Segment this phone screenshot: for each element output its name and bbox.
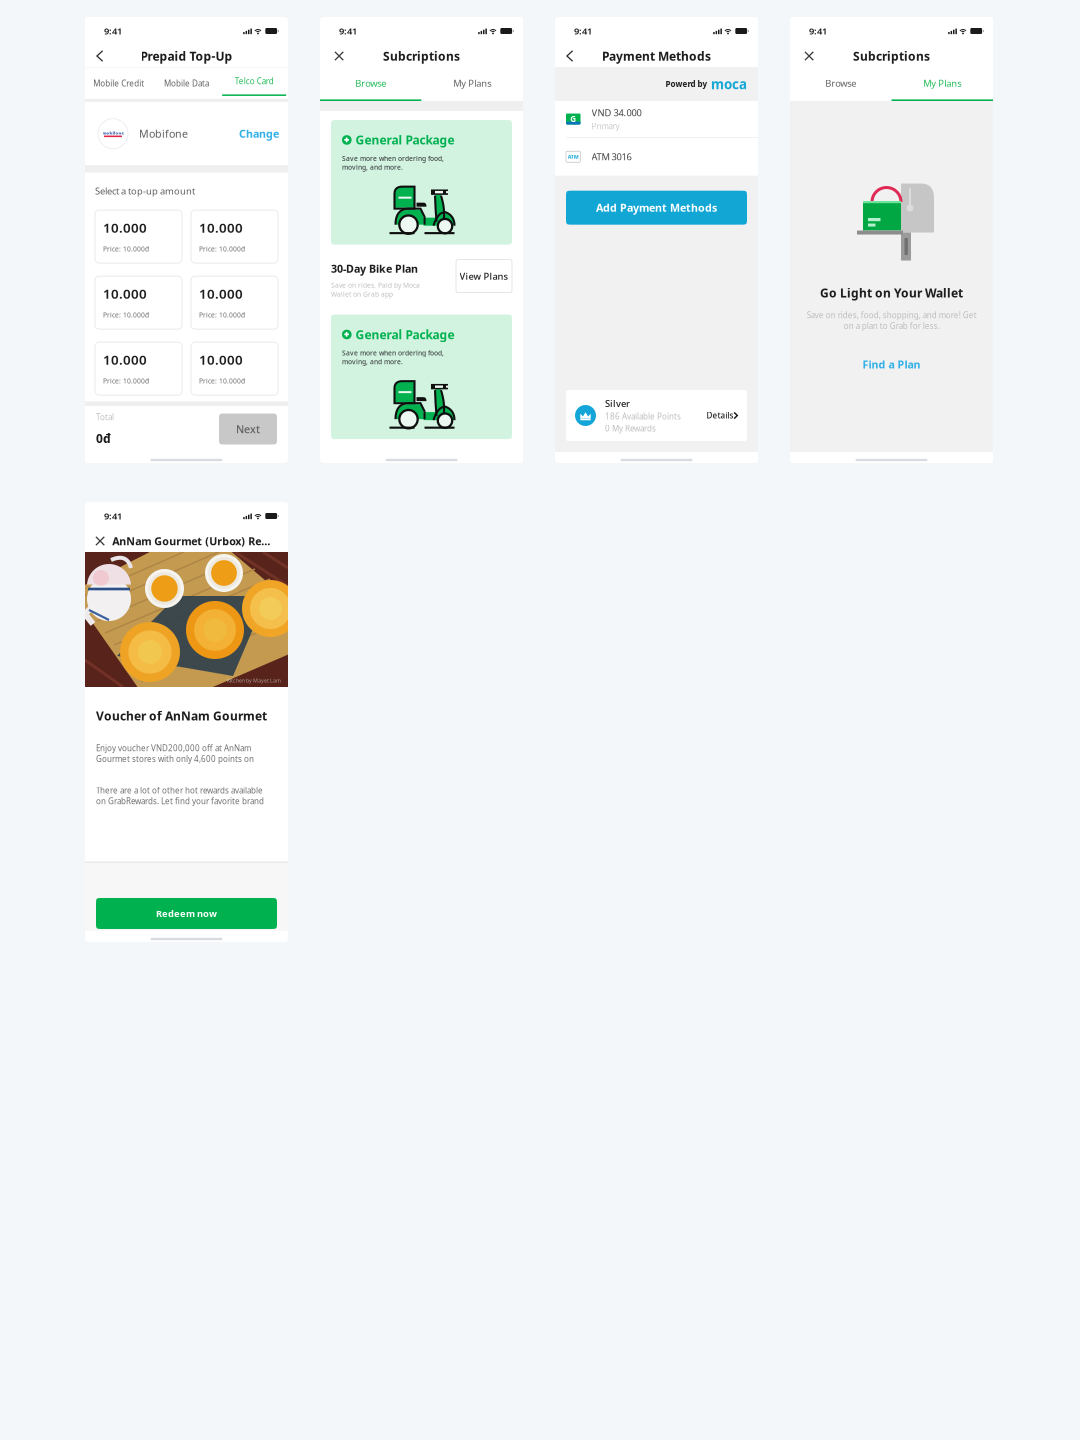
- staticText: 10.000: [199, 351, 243, 368]
- staticText: 9:41: [809, 25, 827, 37]
- staticText: Mobile Data: [164, 78, 209, 89]
- staticText: Payment Methods: [602, 48, 711, 64]
- staticText: Go Light on Your Wallet: [820, 285, 963, 301]
- button[interactable]: My Plans: [421, 67, 523, 101]
- button[interactable]: Back: [555, 45, 583, 67]
- button[interactable]: 10.000: [191, 276, 278, 329]
- staticText: Select a top-up amount: [95, 185, 195, 197]
- button[interactable]: Next: [219, 413, 277, 444]
- button[interactable]: Redeem now: [96, 898, 277, 929]
- staticText: Next: [236, 422, 260, 436]
- button[interactable]: Close: [790, 46, 822, 66]
- staticText: 0đ: [96, 430, 111, 446]
- button[interactable]: My Plans: [891, 67, 993, 101]
- staticText: 9:41: [104, 510, 122, 522]
- button[interactable]: View Plans: [456, 260, 512, 293]
- staticText: Prepaid Top-Up: [140, 48, 232, 64]
- staticText: mobifone: [102, 130, 123, 135]
- button[interactable]: 10.000: [95, 276, 182, 329]
- button[interactable]: Browse: [790, 67, 891, 101]
- staticText: Telco Card: [235, 76, 274, 86]
- staticText: My Plans: [923, 77, 961, 89]
- staticText: AnNam Gourmet (Urbox) Rewa...: [112, 534, 273, 548]
- staticText: Subcriptions: [383, 48, 460, 64]
- staticText: Details: [706, 410, 733, 421]
- staticText: There are a lot of other hot rewards ava…: [96, 785, 264, 806]
- staticText: Add Payment Methods: [596, 201, 717, 215]
- staticText: Save on rides. Paid by Moca Wallet on Gr…: [331, 281, 420, 298]
- button[interactable]: Browse: [320, 67, 421, 101]
- staticText: moca: [711, 75, 747, 93]
- staticText: Powerd by: [665, 79, 707, 89]
- button[interactable]: Find a Plan: [850, 350, 932, 378]
- staticText: Price: 10.000đ: [103, 310, 149, 319]
- staticText: Save more when ordering food, moving, an…: [342, 154, 444, 172]
- staticText: ATM 3016: [591, 150, 631, 163]
- button[interactable]: Telco Card: [220, 68, 288, 99]
- staticText: Total: [96, 412, 114, 422]
- button[interactable]: Mobile Data: [153, 68, 220, 99]
- staticText: 10.000: [199, 219, 243, 236]
- staticText: 186 Available Points: [605, 411, 681, 422]
- staticText: 10.000: [103, 219, 147, 236]
- staticText: Find a Plan: [862, 357, 920, 371]
- staticText: Price: 10.000đ: [103, 244, 149, 253]
- button[interactable]: Mobile Credit: [85, 68, 153, 99]
- staticText: Change: [239, 127, 279, 141]
- staticText: 0 My Rewards: [605, 423, 656, 434]
- staticText: View Plans: [459, 270, 508, 282]
- staticText: Browse: [825, 77, 856, 89]
- staticText: Silver: [605, 397, 630, 410]
- staticText: Mobile Credit: [93, 78, 144, 89]
- staticText: 10.000: [103, 351, 147, 368]
- button[interactable]: 10.000: [191, 342, 278, 395]
- staticText: My Plans: [453, 77, 491, 89]
- staticText: Save more when ordering food, moving, an…: [342, 348, 444, 366]
- staticText: Enjoy voucher VND200,000 off at AnNam Go…: [96, 743, 254, 764]
- staticText: General Package: [356, 132, 455, 148]
- button[interactable]: 10.000: [95, 210, 182, 263]
- staticText: 10.000: [103, 285, 147, 302]
- button[interactable]: G: [555, 101, 758, 137]
- staticText: Voucher of AnNam Gourmet: [96, 708, 267, 724]
- staticText: G: [570, 114, 576, 124]
- button[interactable]: Add Payment Methods: [566, 191, 747, 225]
- staticText: ATM: [568, 153, 579, 160]
- staticText: 10.000: [199, 285, 243, 302]
- button[interactable]: 10.000: [191, 210, 278, 263]
- staticText: 9:41: [104, 25, 122, 37]
- staticText: 9:41: [574, 25, 592, 37]
- button[interactable]: ATM: [555, 138, 758, 176]
- staticText: Price: 10.000đ: [199, 310, 245, 319]
- staticText: Price: 10.000đ: [103, 376, 149, 385]
- staticText: Price: 10.000đ: [199, 244, 245, 253]
- staticText: Kitchen by Mayet Lam: [227, 677, 281, 684]
- staticText: Primary: [591, 121, 619, 131]
- staticText: 9:41: [339, 25, 357, 37]
- button[interactable]: Change: [239, 127, 279, 141]
- staticText: Redeem now: [156, 907, 217, 920]
- staticText: General Package: [356, 326, 455, 342]
- staticText: Price: 10.000đ: [199, 376, 245, 385]
- staticText: Browse: [355, 77, 386, 89]
- button[interactable]: Silver: [566, 390, 747, 441]
- button[interactable]: 10.000: [95, 342, 182, 395]
- staticText: 30-Day Bike Plan: [331, 262, 418, 276]
- staticText: Save on rides, food, shopping, and more!…: [806, 310, 976, 331]
- staticText: Mobifone: [139, 127, 188, 141]
- button[interactable]: Close: [320, 46, 352, 66]
- staticText: Subcriptions: [853, 48, 930, 64]
- button[interactable]: Back: [85, 45, 113, 67]
- staticText: VND 34.000: [591, 106, 641, 119]
- button[interactable]: Close: [85, 532, 105, 550]
